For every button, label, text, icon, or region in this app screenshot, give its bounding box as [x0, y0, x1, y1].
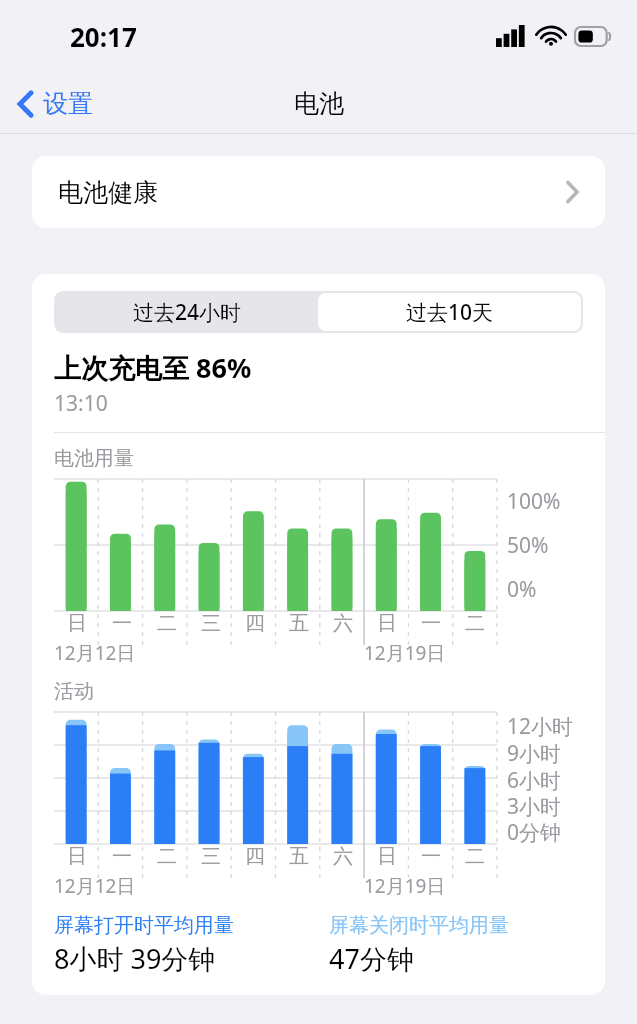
staticText: 3小时: [507, 792, 562, 818]
staticText: 12月19日: [364, 640, 446, 666]
staticText: 日: [67, 844, 87, 869]
button[interactable]: 设置: [0, 82, 107, 125]
staticText: 一: [112, 611, 132, 636]
staticText: 三: [201, 611, 221, 636]
button[interactable]: 电池健康: [32, 156, 605, 228]
button[interactable]: 过去24小时: [56, 293, 318, 331]
staticText: 一: [112, 844, 132, 869]
staticText: 屏幕关闭时平均用量: [329, 913, 509, 938]
staticText: 四: [245, 611, 265, 636]
staticText: 二: [157, 611, 177, 636]
staticText: 设置: [43, 88, 93, 119]
staticText: 0%: [507, 575, 537, 604]
staticText: 日: [67, 611, 87, 636]
staticText: 50%: [507, 531, 549, 560]
staticText: 五: [289, 611, 309, 636]
staticText: 二: [465, 844, 485, 869]
staticText: 一: [421, 611, 441, 636]
staticText: 六: [333, 611, 353, 636]
staticText: 12月12日: [54, 640, 136, 666]
staticText: 12月19日: [364, 873, 446, 899]
staticText: 日: [377, 611, 397, 636]
staticText: 8小时 39分钟: [54, 940, 216, 977]
staticText: 过去24小时: [133, 298, 242, 327]
staticText: 12月12日: [54, 873, 136, 899]
staticText: 过去10天: [406, 298, 494, 327]
staticText: 12小时: [507, 712, 574, 739]
staticText: 二: [157, 844, 177, 869]
staticText: 四: [245, 844, 265, 869]
staticText: 日: [377, 844, 397, 869]
staticText: 一: [421, 844, 441, 869]
staticText: 五: [289, 844, 309, 869]
staticText: 三: [201, 844, 221, 869]
staticText: 13:10: [54, 389, 108, 418]
staticText: 47分钟: [329, 940, 414, 977]
staticText: 二: [465, 611, 485, 636]
staticText: 六: [333, 844, 353, 869]
button[interactable]: 过去10天: [318, 293, 581, 331]
staticText: 电池: [294, 88, 344, 119]
staticText: 20:17: [70, 19, 137, 54]
staticText: 100%: [507, 487, 561, 516]
staticText: 电池健康: [58, 177, 158, 208]
staticText: 6小时: [507, 766, 562, 792]
staticText: 上次充电至 86%: [54, 349, 252, 386]
staticText: 活动: [54, 679, 94, 704]
staticText: 屏幕打开时平均用量: [54, 913, 234, 938]
staticText: 0分钟: [507, 818, 562, 844]
staticText: 电池用量: [54, 446, 134, 471]
staticText: 9小时: [507, 739, 562, 766]
